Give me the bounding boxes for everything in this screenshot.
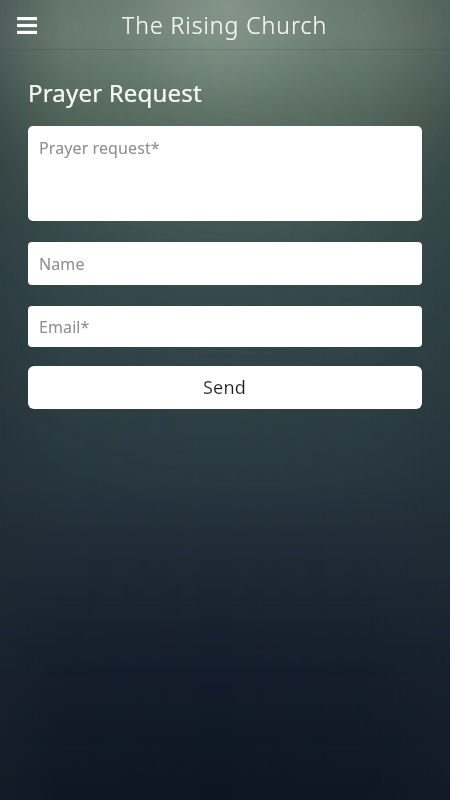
button[interactable]: Prayer request* <box>28 126 422 221</box>
staticText: Prayer Request <box>28 76 202 109</box>
staticText: The Rising Church <box>122 9 328 40</box>
button[interactable]: Email* <box>28 306 422 347</box>
button[interactable]: Name <box>28 242 422 285</box>
staticText: Prayer request* <box>39 137 160 159</box>
button[interactable]: Open navigation menu <box>6 5 47 46</box>
staticText: Email* <box>39 316 90 338</box>
staticText: Send <box>203 375 247 400</box>
button[interactable]: Send <box>28 366 422 409</box>
staticText: Name <box>39 253 85 275</box>
